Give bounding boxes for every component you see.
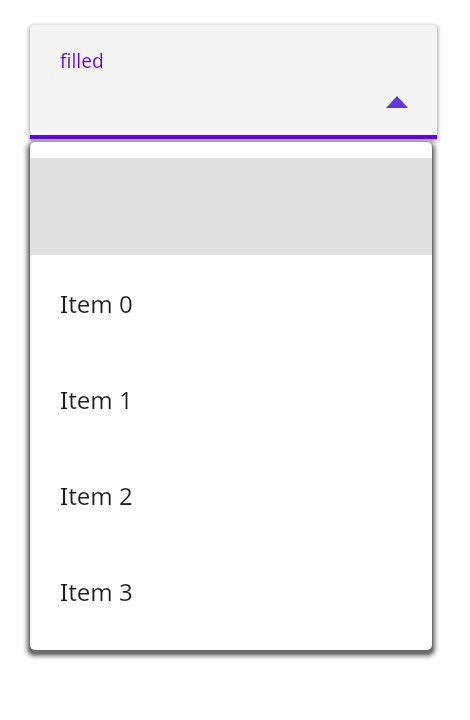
staticText: Item 2 <box>60 479 133 512</box>
button[interactable]: Item 3 <box>30 543 432 639</box>
button[interactable]: filled <box>30 25 437 139</box>
staticText: Item 0 <box>60 287 133 320</box>
button[interactable]: Item 0 <box>30 255 432 351</box>
button[interactable]: Collapse dropdown <box>379 84 415 120</box>
staticText: Item 3 <box>60 575 133 608</box>
button[interactable]: Item 1 <box>30 351 432 447</box>
staticText: Item 1 <box>60 383 133 416</box>
staticText: filled <box>60 48 104 74</box>
button[interactable]: Item 2 <box>30 447 432 543</box>
